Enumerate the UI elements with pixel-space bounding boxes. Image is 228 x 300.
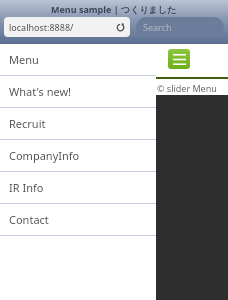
- staticText: Search: [143, 21, 172, 33]
- button[interactable]: What's new!: [0, 76, 156, 107]
- staticText: © slider Menu: [157, 82, 217, 94]
- button[interactable]: Recruit: [0, 108, 156, 139]
- staticText: Recruit: [9, 116, 46, 131]
- button[interactable]: Menu: [0, 44, 156, 75]
- staticText: Contact: [9, 212, 49, 227]
- button[interactable]: Search: [136, 17, 224, 37]
- staticText: Menu sample | つくりました: [51, 3, 177, 15]
- button[interactable]: localhost:8888/htmlsamp: [4, 17, 130, 37]
- button[interactable]: Contact: [0, 204, 156, 235]
- staticText: localhost:8888/htmlsamp: [9, 21, 116, 33]
- staticText: Menu: [9, 52, 39, 67]
- staticText: What's new!: [9, 84, 72, 99]
- button[interactable]: Open menu: [168, 49, 190, 69]
- button[interactable]: CompanyInfo: [0, 140, 156, 171]
- staticText: IR Info: [9, 180, 44, 195]
- staticText: CompanyInfo: [9, 148, 80, 163]
- button[interactable]: IR Info: [0, 172, 156, 203]
